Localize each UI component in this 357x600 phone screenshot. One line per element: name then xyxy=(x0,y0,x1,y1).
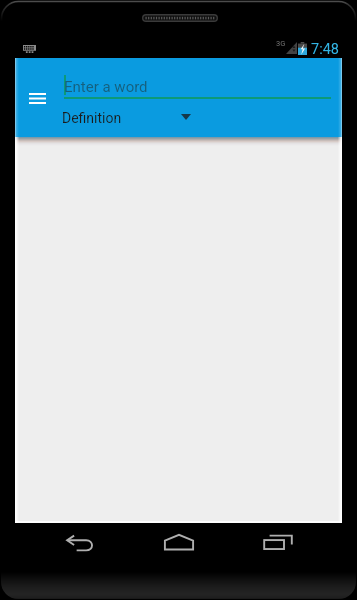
staticText: Definition xyxy=(62,110,122,126)
staticText: Enter a word xyxy=(64,78,148,96)
staticText: 7:48 xyxy=(311,41,339,58)
button[interactable]: Home xyxy=(155,526,203,558)
button[interactable]: Recent apps xyxy=(254,526,302,558)
button[interactable]: Open navigation drawer xyxy=(17,78,57,118)
button[interactable]: Definition xyxy=(57,103,209,129)
staticText: 3G xyxy=(276,39,286,48)
button[interactable]: Back xyxy=(56,527,104,559)
